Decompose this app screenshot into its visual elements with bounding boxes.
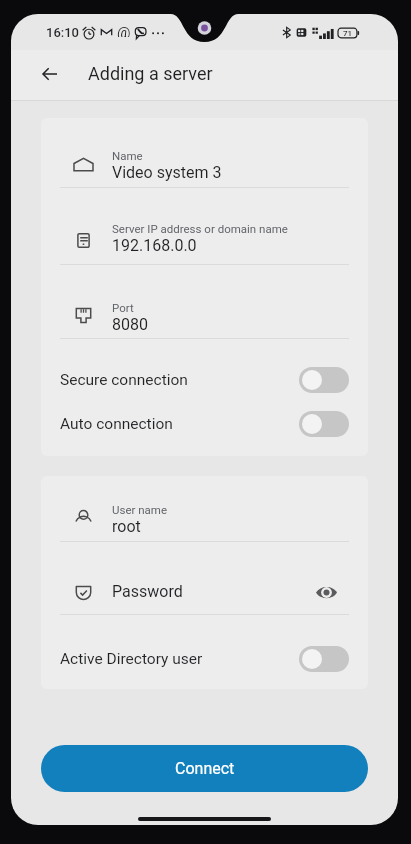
staticText: Active Directory user [60, 650, 203, 668]
staticText: 71 [343, 29, 353, 38]
staticText: Server IP address or domain name [112, 222, 288, 235]
button[interactable]: Auto connection [41, 402, 368, 446]
staticText: Auto connection [60, 415, 173, 433]
staticText: 16:10 [46, 25, 80, 40]
staticText: 8080 [112, 315, 148, 334]
button[interactable]: Back [30, 54, 70, 94]
staticText: Connect [175, 759, 235, 778]
button[interactable]: Password [41, 542, 368, 614]
staticText: root [112, 517, 141, 536]
button[interactable]: Show password [309, 575, 343, 609]
button[interactable]: Connect [41, 745, 368, 792]
staticText: Secure connection [60, 371, 188, 389]
button[interactable]: Active Directory user [41, 637, 368, 681]
staticText: Name [112, 149, 143, 162]
button[interactable]: Secure connection [41, 358, 368, 402]
button[interactable]: Name [41, 118, 368, 187]
staticText: Password [112, 582, 183, 601]
staticText: @ [117, 24, 130, 37]
button[interactable]: Port [41, 265, 368, 338]
staticText: User name [112, 503, 168, 516]
button[interactable]: User name [41, 476, 368, 541]
staticText: 192.168.0.0 [112, 236, 197, 255]
button[interactable]: Server IP address or domain name [41, 188, 368, 264]
staticText: Port [112, 301, 134, 314]
staticText: Adding a server [88, 63, 213, 84]
staticText: Video system 3 [112, 163, 222, 182]
